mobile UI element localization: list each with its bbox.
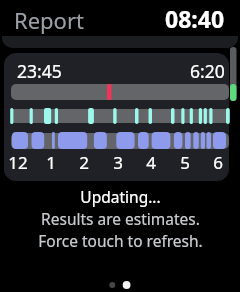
staticText: Results are estimates. xyxy=(41,208,200,229)
staticText: Report xyxy=(14,5,84,35)
staticText: 2 xyxy=(79,151,89,174)
staticText: 23:45 xyxy=(17,59,62,83)
staticText: 6 xyxy=(213,151,223,174)
staticText: Updating... xyxy=(80,186,161,207)
button[interactable] xyxy=(2,36,238,48)
button[interactable] xyxy=(4,53,229,181)
staticText: 6:20 xyxy=(190,59,225,83)
staticText: 4 xyxy=(146,151,156,174)
staticText: 08:40 xyxy=(165,3,225,33)
staticText: Force touch to refresh. xyxy=(38,230,203,251)
staticText: 5 xyxy=(180,151,190,174)
staticText: 3 xyxy=(113,151,123,174)
staticText: 12 xyxy=(8,151,28,174)
staticText: 1 xyxy=(46,151,56,174)
